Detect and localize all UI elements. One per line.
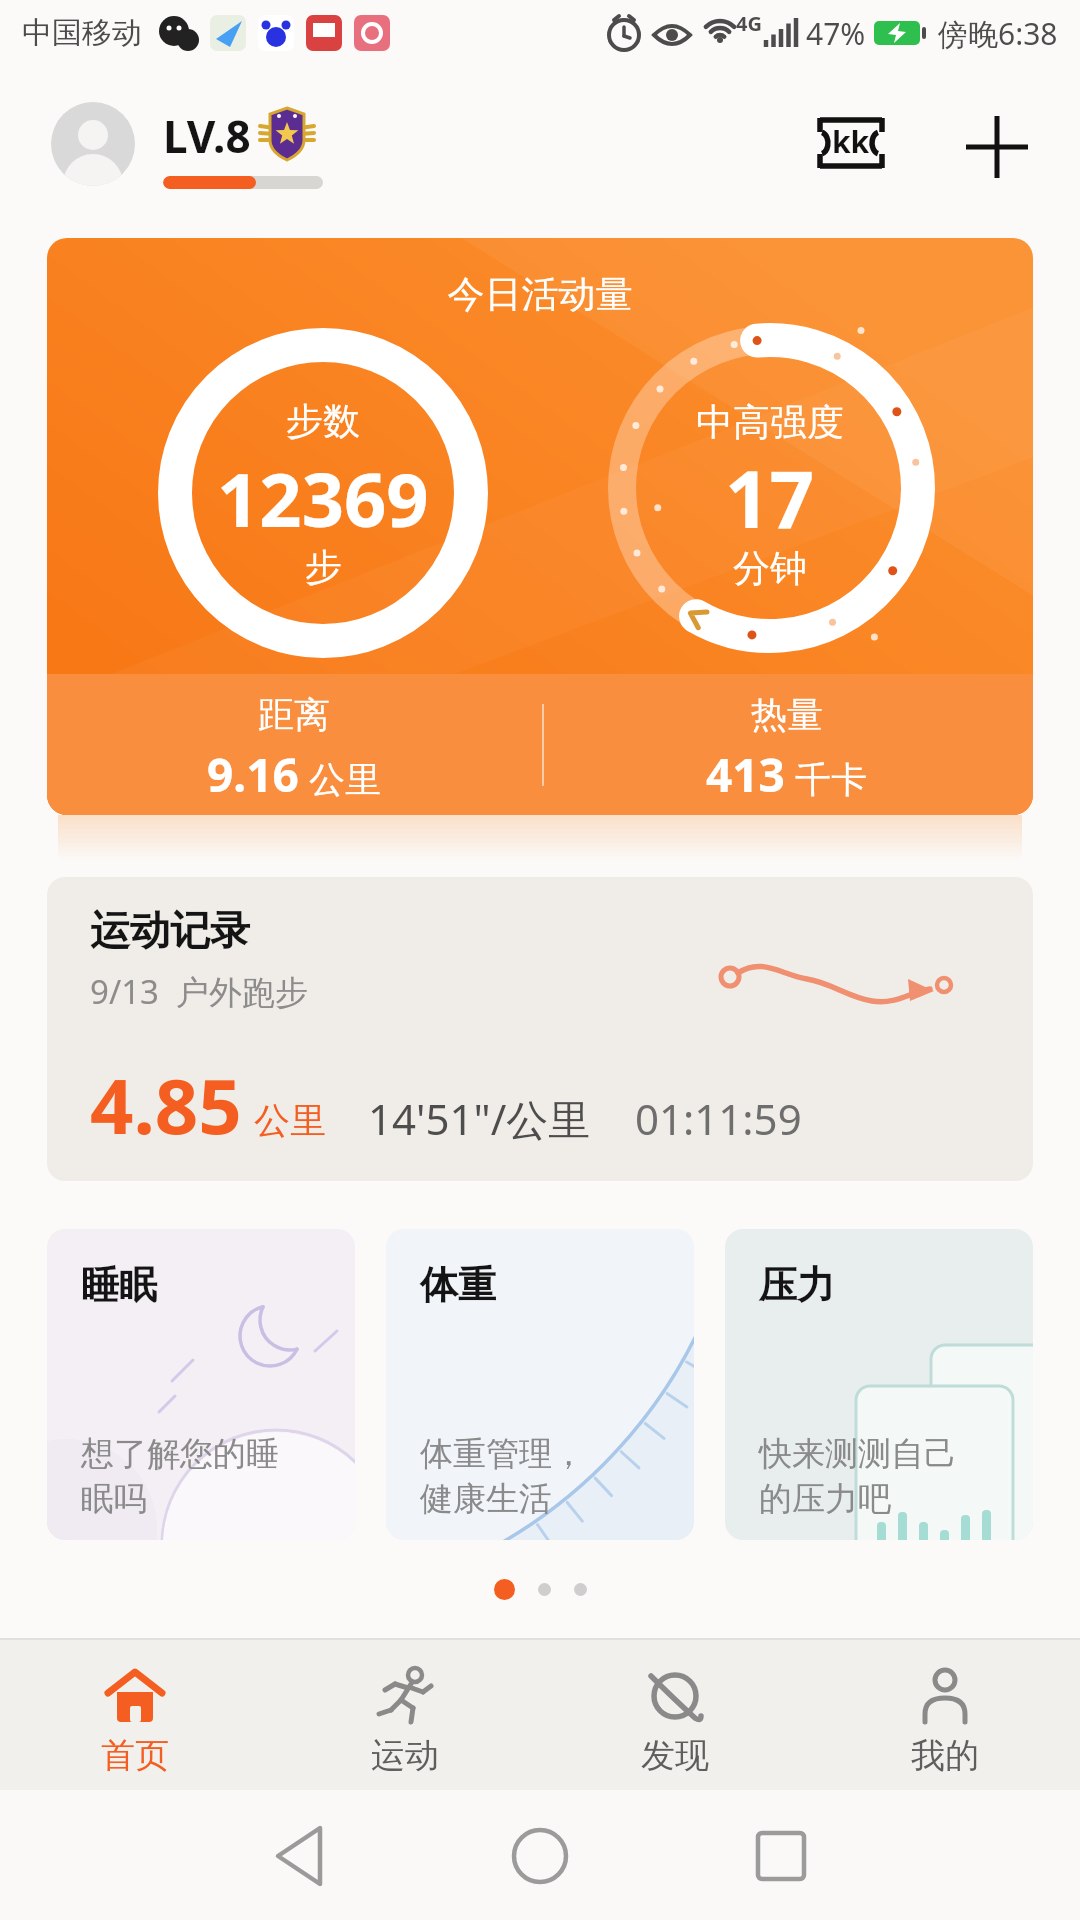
staticText: 中高强度	[696, 399, 844, 446]
staticText: 热量	[751, 692, 823, 737]
staticText: 9.16	[207, 743, 299, 806]
button[interactable]: 首页	[0, 1640, 270, 1790]
staticText: 压力	[759, 1261, 835, 1309]
staticText: 首页	[101, 1734, 169, 1777]
staticText: 413	[706, 743, 785, 806]
staticText: 体重	[420, 1261, 496, 1309]
staticText: kk	[832, 121, 870, 162]
button[interactable]	[262, 1820, 338, 1896]
button[interactable]	[952, 102, 1042, 192]
button[interactable]	[747, 1820, 817, 1890]
button[interactable]: 运动	[270, 1640, 540, 1790]
staticText: LV.8	[163, 106, 251, 166]
button[interactable]: 压力	[725, 1229, 1033, 1540]
button[interactable]: 体重	[386, 1229, 694, 1540]
staticText: 我的	[911, 1734, 979, 1777]
staticText: 4.85	[90, 1053, 242, 1157]
staticText: 17	[725, 445, 815, 551]
staticText: 睡眠	[81, 1261, 157, 1309]
button[interactable]: 睡眠	[47, 1229, 355, 1540]
staticText: 公里	[309, 757, 381, 802]
staticText: 中国移动	[22, 14, 142, 52]
staticText: 9/13 户外跑步	[90, 969, 309, 1014]
staticText: 分钟	[733, 545, 807, 592]
staticText: 运动记录	[90, 905, 250, 955]
staticText: 想了解您的睡 眠吗	[81, 1433, 279, 1520]
staticText: 千卡	[795, 757, 867, 802]
button[interactable]: 今日活动量	[47, 238, 1033, 815]
staticText: 12369	[217, 448, 429, 549]
staticText: 步数	[286, 398, 360, 445]
button[interactable]: 运动记录	[47, 877, 1033, 1181]
staticText: 01:11:59	[635, 1090, 802, 1147]
button[interactable]: kk	[810, 110, 892, 176]
staticText: 体重管理， 健康生活	[420, 1433, 585, 1520]
staticText: 步	[305, 544, 342, 591]
staticText: 快来测测自己 的压力吧	[759, 1433, 957, 1520]
staticText: 14'51"/公里	[368, 1090, 591, 1147]
staticText: 发现	[641, 1734, 709, 1777]
staticText: 公里	[254, 1098, 326, 1143]
button[interactable]	[51, 102, 135, 186]
button[interactable]: 发现	[540, 1640, 810, 1790]
staticText: 傍晚6:38	[938, 13, 1058, 54]
staticText: 距离	[258, 692, 330, 737]
staticText: 运动	[371, 1734, 439, 1777]
button[interactable]: 我的	[810, 1640, 1080, 1790]
staticText: 47%	[806, 13, 866, 54]
staticText: 4G	[736, 10, 762, 37]
staticText: 今日活动量	[47, 271, 1033, 318]
button[interactable]	[505, 1820, 575, 1890]
